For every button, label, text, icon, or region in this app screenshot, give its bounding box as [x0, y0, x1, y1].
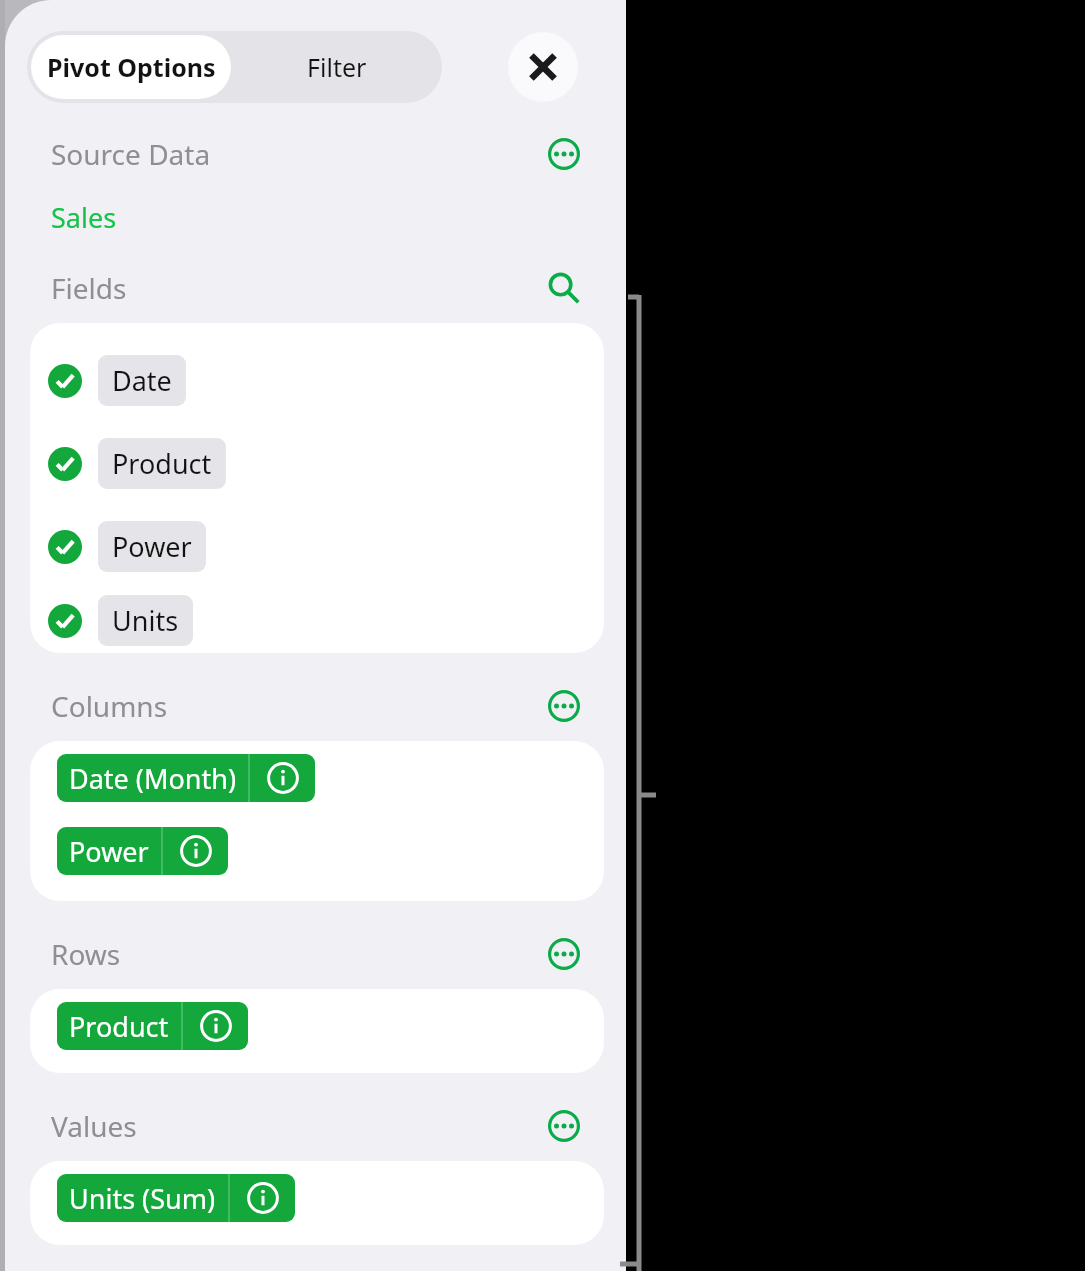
- staticText: Rows: [51, 935, 121, 973]
- staticText: Pivot Options: [47, 50, 216, 84]
- staticText: Date (Month): [69, 760, 236, 797]
- button[interactable]: Filter: [235, 35, 438, 99]
- staticText: Filter: [307, 50, 367, 84]
- button[interactable]: Search fields: [544, 268, 584, 308]
- button[interactable]: Product: [57, 1002, 248, 1050]
- button[interactable]: Info about Date (Month): [250, 754, 315, 802]
- staticText: Values: [51, 1107, 137, 1145]
- staticText: Units: [112, 602, 179, 639]
- button[interactable]: Info about Product: [183, 1002, 248, 1050]
- button[interactable]: Date: [48, 339, 604, 422]
- button[interactable]: More options for Rows: [544, 934, 584, 974]
- button[interactable]: Info about Power: [163, 827, 228, 875]
- button[interactable]: Date (Month): [57, 754, 315, 802]
- staticText: Power: [69, 833, 149, 870]
- button[interactable]: Units: [48, 588, 604, 653]
- staticText: Source Data: [51, 135, 211, 173]
- button[interactable]: More options for Columns: [544, 686, 584, 726]
- button[interactable]: Info about Units (Sum): [230, 1174, 295, 1222]
- button[interactable]: Product: [48, 422, 604, 505]
- button[interactable]: Units (Sum): [57, 1174, 295, 1222]
- staticText: Product: [69, 1008, 169, 1045]
- staticText: Power: [112, 528, 192, 565]
- staticText: Product: [112, 445, 212, 482]
- button[interactable]: Pivot Options: [31, 35, 231, 99]
- staticText: Sales: [51, 199, 117, 236]
- staticText: Date: [112, 362, 172, 399]
- staticText: Columns: [51, 687, 168, 725]
- staticText: Units (Sum): [69, 1180, 216, 1217]
- button[interactable]: More options for Source Data: [544, 134, 584, 174]
- button[interactable]: Close: [508, 32, 578, 102]
- staticText: Fields: [51, 269, 127, 307]
- button[interactable]: More options for Values: [544, 1106, 584, 1146]
- button[interactable]: Power: [48, 505, 604, 588]
- button[interactable]: Power: [57, 827, 228, 875]
